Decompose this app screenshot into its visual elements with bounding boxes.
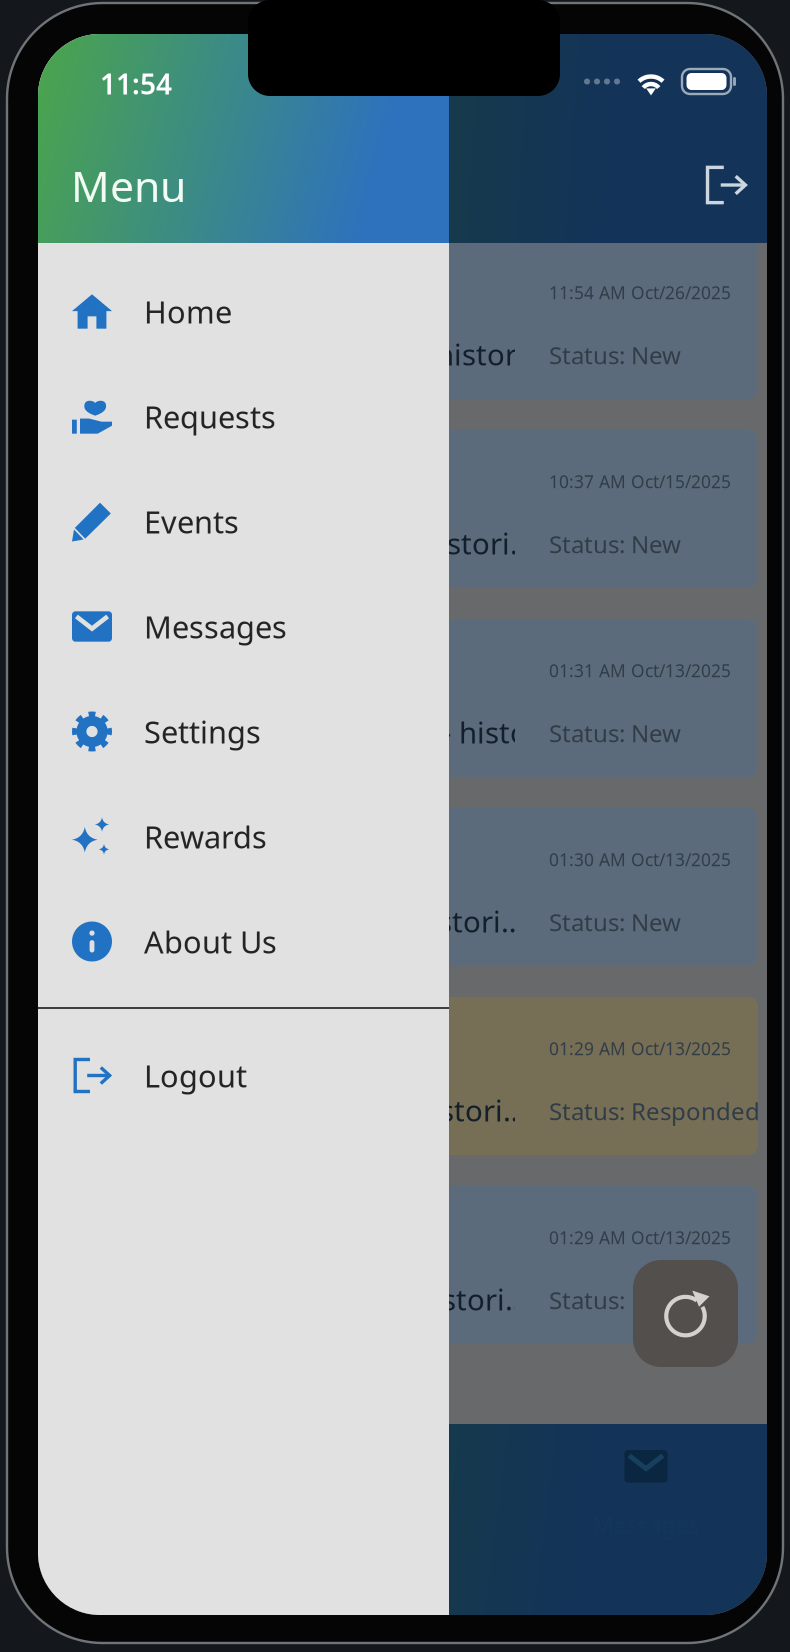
button[interactable]: Events <box>38 469 449 574</box>
staticText: 01:29 AM Oct/13/2025 <box>549 1226 731 1249</box>
staticText: About Us <box>144 921 277 962</box>
staticText: Status: New <box>549 1284 681 1316</box>
staticText: 11:54 AM Oct/26/2025 <box>549 281 731 304</box>
button[interactable]: Winter coat collection — histori… <box>50 430 758 588</box>
staticText: 11:54 <box>100 65 172 102</box>
staticText: Status: New <box>549 339 681 371</box>
staticText: Status: New <box>549 528 681 560</box>
button[interactable]: Shelter support team — histori… <box>50 997 758 1155</box>
staticText: Messages <box>144 606 287 647</box>
staticText: Winter coat collection — histori… <box>74 523 533 562</box>
button[interactable]: Home <box>38 259 449 364</box>
staticText: Status: New <box>549 717 681 749</box>
staticText: Menu <box>71 157 186 214</box>
button[interactable]: Messages <box>555 1424 737 1544</box>
button[interactable]: Log out <box>691 150 761 220</box>
staticText: Blood donation camp — histori… <box>74 1279 528 1318</box>
button[interactable]: Blood donation camp — histori… <box>50 1186 758 1344</box>
button[interactable]: School supplies drive — histori… <box>50 808 758 966</box>
staticText: School supplies drive — histori… <box>74 901 524 940</box>
button[interactable]: Community kitchen help — histori… <box>50 619 758 777</box>
staticText: Home <box>144 291 232 332</box>
staticText: Shelter support team — histori… <box>74 1090 526 1129</box>
staticText: Food distribution drive — histori… <box>74 334 548 373</box>
staticText: 10:37 AM Oct/15/2025 <box>549 470 731 493</box>
button[interactable]: Food distribution drive — histori… <box>50 241 758 399</box>
staticText: Rewards <box>144 816 267 857</box>
staticText: Community kitchen help — histori… <box>74 712 571 751</box>
staticText: Logout <box>144 1055 247 1096</box>
staticText: 01:31 AM Oct/13/2025 <box>549 659 731 682</box>
staticText: Requests <box>144 396 276 437</box>
button[interactable]: Settings <box>38 679 449 784</box>
staticText: Settings <box>144 711 261 752</box>
button[interactable]: Refresh <box>633 1260 738 1367</box>
staticText: 01:29 AM Oct/13/2025 <box>549 1037 731 1060</box>
staticText: 11:54 <box>100 65 172 102</box>
staticText: Events <box>144 501 239 542</box>
button[interactable]: Messages <box>38 574 449 679</box>
button[interactable]: Rewards <box>38 784 449 889</box>
button[interactable]: Requests <box>38 364 449 469</box>
staticText: 01:30 AM Oct/13/2025 <box>549 848 731 871</box>
button[interactable]: Logout <box>38 1023 449 1128</box>
staticText: Status: Responded <box>549 1095 760 1127</box>
button[interactable]: About Us <box>38 889 449 994</box>
staticText: Requests & Volunteer <box>72 158 396 200</box>
staticText: Status: New <box>549 906 681 938</box>
